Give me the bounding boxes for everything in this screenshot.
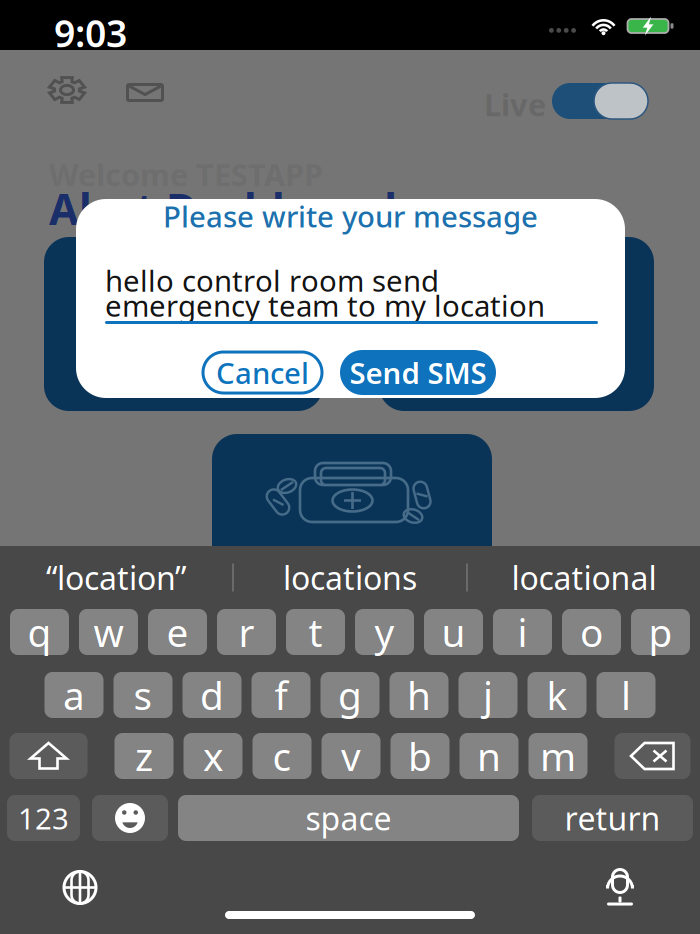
staticText: z [135, 730, 153, 782]
button[interactable]: b [390, 733, 449, 779]
staticText: emergency team to my location [105, 286, 545, 325]
staticText: Cancel [216, 353, 309, 392]
staticText: return [564, 797, 660, 839]
button[interactable]: r [217, 609, 276, 655]
staticText: d [200, 669, 224, 721]
button[interactable]: l [596, 672, 655, 718]
button[interactable]: i [493, 609, 552, 655]
staticText: y [374, 606, 394, 658]
button[interactable]: d [182, 672, 241, 718]
button[interactable]: g [320, 672, 379, 718]
staticText: locational [511, 556, 656, 599]
button[interactable]: Dictation [602, 870, 638, 905]
staticText: 123 [18, 798, 69, 837]
button[interactable]: 123 [7, 795, 80, 841]
button[interactable]: Shift [9, 733, 87, 779]
button[interactable]: locations [234, 546, 466, 608]
button[interactable]: w [79, 609, 138, 655]
staticText: s [133, 669, 152, 721]
button[interactable]: n [459, 733, 518, 779]
button[interactable]: a [44, 672, 103, 718]
staticText: hello control room send [105, 261, 439, 300]
staticText: q [27, 606, 51, 658]
button[interactable]: p [631, 609, 690, 655]
staticText: k [546, 669, 567, 721]
staticText: Welcome TESTAPP [49, 154, 323, 195]
button[interactable]: z [114, 733, 173, 779]
staticText: Send SMS [349, 353, 486, 392]
staticText: g [338, 669, 362, 721]
button[interactable]: Emoji [92, 795, 168, 841]
button[interactable]: space [178, 795, 519, 841]
button[interactable]: t [286, 609, 345, 655]
button[interactable]: c [252, 733, 311, 779]
button[interactable]: q [10, 609, 69, 655]
staticText: space [305, 797, 391, 839]
staticText: v [341, 730, 361, 782]
button[interactable]: e [148, 609, 207, 655]
button[interactable]: j [458, 672, 517, 718]
staticText: c [272, 730, 291, 782]
staticText: l [621, 669, 631, 721]
staticText: u [441, 606, 465, 658]
button[interactable]: Switch keyboard [55, 870, 105, 905]
button[interactable]: “location” [0, 546, 232, 608]
staticText: a [63, 669, 85, 721]
staticText: i [517, 606, 527, 658]
button[interactable]: o [562, 609, 621, 655]
button[interactable]: s [113, 672, 172, 718]
button[interactable]: Live [552, 83, 648, 119]
staticText: p [648, 606, 672, 658]
staticText: t [308, 606, 322, 658]
button[interactable]: locational [468, 546, 700, 608]
staticText: b [408, 730, 432, 782]
button[interactable]: x [183, 733, 242, 779]
staticText: j [483, 669, 493, 721]
staticText: 9:03 [54, 8, 127, 58]
button[interactable]: Settings [48, 76, 86, 104]
button[interactable]: u [424, 609, 483, 655]
staticText: e [166, 606, 188, 658]
button[interactable]: Send SMS [340, 350, 496, 395]
staticText: Alert Dashboard [49, 180, 397, 237]
button[interactable]: y [355, 609, 414, 655]
staticText: n [477, 730, 501, 782]
staticText: r [238, 606, 254, 658]
staticText: o [580, 606, 603, 658]
staticText: m [540, 730, 576, 782]
staticText: h [407, 669, 431, 721]
button[interactable]: Cancel [203, 352, 322, 393]
staticText: locations [283, 556, 417, 599]
button[interactable]: k [527, 672, 586, 718]
staticText: “location” [46, 556, 186, 599]
button[interactable]: return [532, 795, 693, 841]
staticText: w [93, 606, 123, 658]
button[interactable]: v [321, 733, 380, 779]
button[interactable]: h [389, 672, 448, 718]
button[interactable]: Messages [126, 83, 164, 102]
button[interactable]: m [528, 733, 587, 779]
staticText: f [274, 669, 287, 721]
button[interactable]: Delete [614, 733, 690, 779]
staticText: Please write your message [163, 196, 538, 235]
staticText: x [203, 730, 223, 782]
button[interactable]: f [251, 672, 310, 718]
staticText: Live [484, 84, 546, 125]
